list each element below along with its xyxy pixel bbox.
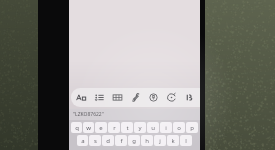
button[interactable]: j xyxy=(154,135,166,146)
button[interactable]: g xyxy=(128,135,140,146)
staticText: s xyxy=(94,137,97,145)
staticText: d xyxy=(106,137,110,145)
button[interactable]: l xyxy=(180,135,192,146)
button[interactable]: y xyxy=(134,122,146,133)
staticText: u xyxy=(151,124,155,132)
staticText: g xyxy=(132,137,136,145)
button[interactable]: k xyxy=(167,135,179,146)
button[interactable]: i xyxy=(160,122,172,133)
button[interactable]: o xyxy=(173,122,185,133)
button[interactable]: s xyxy=(89,135,101,146)
button[interactable]: "LZKO87622" xyxy=(73,111,104,118)
staticText: o xyxy=(177,124,181,132)
staticText: r xyxy=(113,124,116,132)
staticText: t xyxy=(126,124,129,132)
staticText: k xyxy=(171,137,175,145)
staticText: l xyxy=(185,137,187,145)
button[interactable]: Insert table xyxy=(112,92,123,103)
button[interactable]: Bold xyxy=(184,92,195,103)
staticText: w xyxy=(86,124,91,132)
button[interactable]: Lists xyxy=(94,92,105,103)
button[interactable]: e xyxy=(95,122,107,133)
button[interactable]: Record audio xyxy=(148,92,159,103)
staticText: i xyxy=(165,124,167,132)
staticText: f xyxy=(120,137,123,145)
button[interactable]: h xyxy=(141,135,153,146)
staticText: j xyxy=(159,137,161,145)
button[interactable]: q xyxy=(71,122,82,133)
button[interactable]: p xyxy=(186,122,198,133)
button[interactable]: Attach file xyxy=(130,92,141,103)
staticText: "LZKO87622" xyxy=(73,111,104,118)
staticText: q xyxy=(75,124,79,132)
staticText: e xyxy=(99,124,103,132)
button[interactable]: Drawing xyxy=(166,92,177,103)
staticText: y xyxy=(138,124,142,132)
button[interactable]: a xyxy=(77,135,88,146)
button[interactable]: u xyxy=(147,122,159,133)
staticText: a xyxy=(81,137,85,145)
button[interactable]: t xyxy=(121,122,133,133)
button[interactable]: d xyxy=(102,135,114,146)
button[interactable]: f xyxy=(115,135,127,146)
staticText: p xyxy=(190,124,194,132)
button[interactable]: r xyxy=(108,122,120,133)
button[interactable]: w xyxy=(83,122,94,133)
button[interactable]: Text style xyxy=(76,92,87,103)
staticText: h xyxy=(145,137,149,145)
